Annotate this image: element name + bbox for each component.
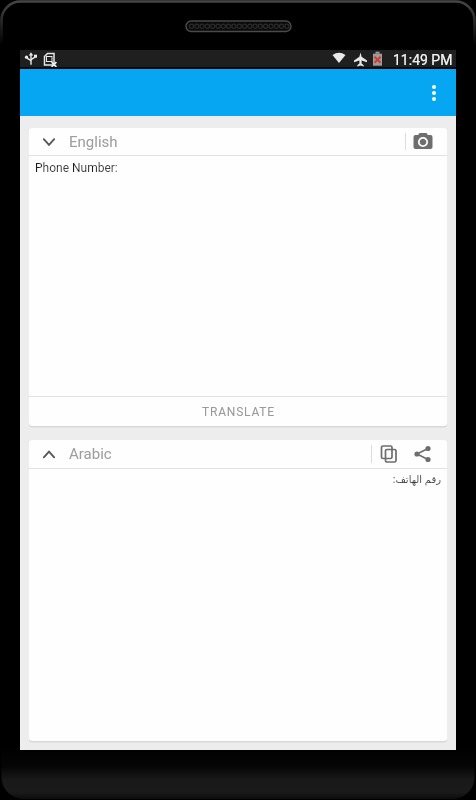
staticText: 11:49 PM xyxy=(393,52,453,68)
button[interactable] xyxy=(419,78,449,108)
staticText: TRANSLATE xyxy=(202,405,275,419)
staticText: رقم الهاتف: xyxy=(392,472,441,486)
button[interactable] xyxy=(372,440,405,468)
staticText: Arabic xyxy=(69,445,112,463)
button[interactable] xyxy=(399,128,447,155)
button[interactable]: Arabic xyxy=(29,440,229,468)
button[interactable] xyxy=(406,440,440,468)
button[interactable]: English xyxy=(29,128,229,155)
staticText: English xyxy=(69,133,118,151)
staticText: Phone Number: xyxy=(35,161,118,175)
button[interactable]: TRANSLATE xyxy=(29,397,447,426)
